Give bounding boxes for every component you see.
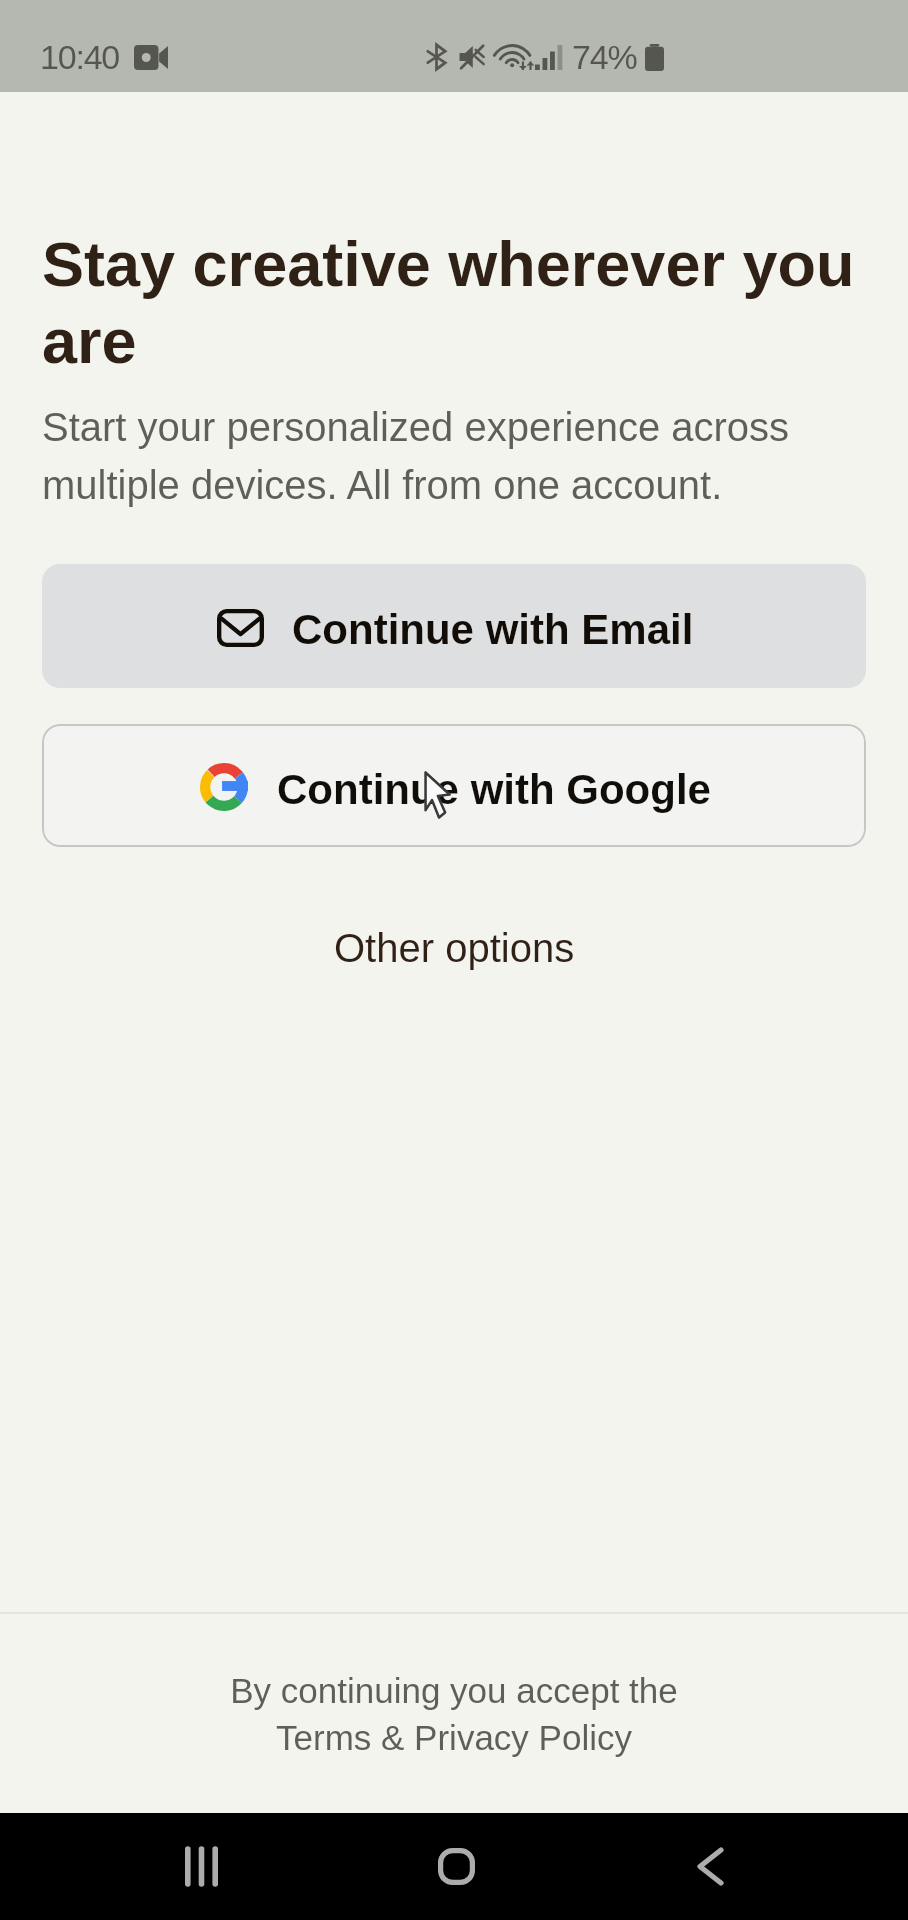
other: Recent apps [185,1849,218,1884]
button[interactable]: Continue with Email [42,564,866,688]
other: Home [438,1848,475,1885]
staticText: By continuing you accept the Terms & Pri… [0,1671,908,1758]
staticText: Start your personalized experience acros… [42,405,866,508]
button[interactable]: Other options [312,914,597,983]
staticText: 74% [572,38,637,76]
button[interactable]: Back [635,1813,785,1920]
staticText: 10:40 [40,38,120,76]
staticText: Continue with Email [292,606,694,653]
button[interactable]: Continue with Google [42,724,866,847]
staticText: Other options [334,926,575,971]
button[interactable]: Recent apps [126,1813,276,1920]
staticText: Stay creative wherever you are [42,229,866,376]
button[interactable]: Home [381,1813,531,1920]
other: Back [700,1850,721,1883]
staticText: Continue with Google [277,766,711,813]
